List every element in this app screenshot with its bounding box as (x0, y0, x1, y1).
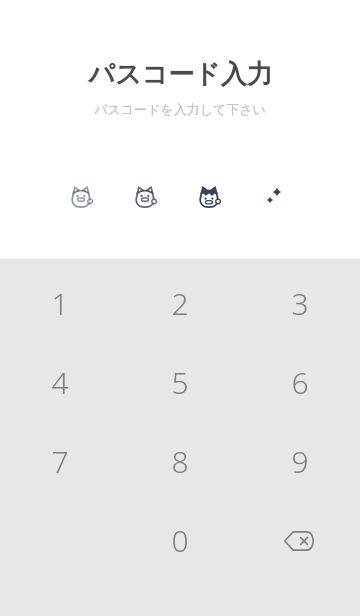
button[interactable]: Delete (240, 501, 360, 580)
button[interactable]: 9 (240, 422, 360, 501)
staticText: 4 (51, 362, 69, 403)
staticText: パスコード入力 (88, 58, 273, 91)
button[interactable]: 5 (120, 343, 240, 422)
staticText: 3 (291, 283, 309, 324)
staticText: 0 (171, 520, 189, 561)
staticText: 5 (171, 362, 189, 403)
staticText: 7 (51, 441, 69, 482)
button[interactable]: 2 (120, 264, 240, 343)
staticText: 2 (171, 283, 189, 324)
staticText: パスコードを入力して下さい (94, 101, 266, 117)
button[interactable]: 1 (0, 264, 120, 343)
button[interactable]: 7 (0, 422, 120, 501)
button[interactable]: 8 (120, 422, 240, 501)
staticText: 1 (51, 283, 69, 324)
staticText: 6 (291, 362, 309, 403)
staticText: 9 (291, 441, 309, 482)
staticText: 8 (171, 441, 189, 482)
button[interactable]: 3 (240, 264, 360, 343)
button[interactable]: 4 (0, 343, 120, 422)
button[interactable]: 6 (240, 343, 360, 422)
button[interactable]: 0 (120, 501, 240, 580)
